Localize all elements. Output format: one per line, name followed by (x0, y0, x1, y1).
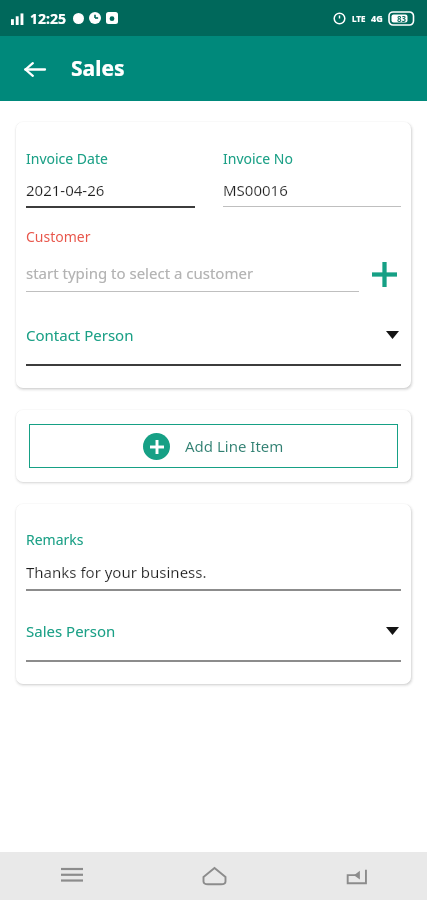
button[interactable]: Contact Person (26, 325, 401, 366)
staticText: 83 (397, 13, 407, 24)
staticText: Remarks (26, 530, 84, 549)
staticText: start typing to select a customer (26, 263, 254, 283)
staticText: 2021-04-26 (26, 180, 105, 200)
button[interactable]: Add Line Item (29, 424, 398, 468)
staticText: MS00016 (223, 180, 288, 200)
staticText: Invoice No (223, 149, 293, 168)
button[interactable]: Sales Person (26, 621, 401, 662)
staticText: 12:25 (30, 9, 66, 28)
staticText: Add Line Item (185, 436, 284, 456)
staticText: Thanks for your business. (26, 562, 207, 582)
staticText: LTE (352, 13, 366, 24)
staticText: Customer (26, 227, 91, 246)
staticText: Contact Person (26, 325, 134, 345)
button[interactable]: Remarks (26, 530, 401, 591)
button[interactable]: Back (16, 51, 52, 87)
staticText: 4G (371, 12, 383, 24)
button[interactable]: start typing to select a customer (26, 263, 359, 292)
button[interactable]: Add customer (367, 257, 401, 291)
staticText: Sales (71, 54, 125, 83)
button[interactable]: Invoice Date (26, 149, 209, 208)
staticText: Invoice Date (26, 149, 108, 168)
staticText: Sales Person (26, 621, 116, 641)
button[interactable]: Back (285, 852, 427, 900)
button[interactable]: Home (143, 852, 285, 900)
button[interactable]: Recent apps (0, 852, 143, 900)
button[interactable]: Invoice No (217, 149, 401, 207)
